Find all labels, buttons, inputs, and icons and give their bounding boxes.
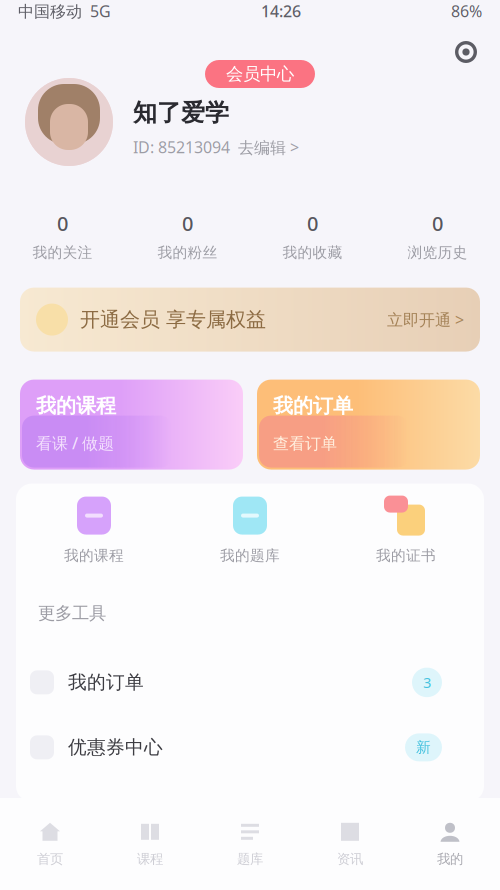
button[interactable]: 我的 [400, 807, 500, 881]
button[interactable]: 会员中心 [205, 60, 315, 88]
staticText: 看课 / 做题 [36, 432, 114, 453]
staticText: 课程 [137, 851, 163, 867]
button[interactable]: 我的证书 [328, 496, 484, 565]
button[interactable]: 我的课程 [16, 496, 172, 565]
button[interactable]: 0 [250, 210, 375, 262]
staticText: 查看订单 [273, 434, 337, 454]
staticText: 我的订单 [273, 394, 353, 418]
staticText: 资讯 [337, 851, 363, 867]
staticText: 我的 [437, 851, 463, 867]
button[interactable]: 我的订单 [257, 380, 480, 470]
button[interactable]: 我的课程 [20, 380, 243, 470]
button[interactable]: 我的题库 [172, 496, 328, 565]
staticText: 立即开通 > [387, 309, 464, 330]
staticText: 开通会员 享专属权益 [80, 307, 266, 332]
staticText: 题库 [237, 851, 263, 867]
staticText: 优惠券中心 [68, 736, 163, 759]
staticText: 14:26 [261, 0, 301, 22]
staticText: 知了爱学 [133, 98, 229, 127]
staticText: 我的课程 [64, 547, 124, 565]
staticText: 中国移动 5G [18, 0, 111, 22]
button[interactable]: 课程 [100, 807, 200, 881]
button[interactable]: Settings [446, 32, 486, 72]
staticText: 我的题库 [220, 547, 280, 565]
button[interactable]: 首页 [0, 807, 100, 881]
staticText: 更多工具 [38, 603, 106, 624]
button[interactable]: 优惠券中心 [16, 715, 484, 780]
staticText: 我的证书 [376, 547, 436, 565]
staticText: 3 [423, 673, 431, 692]
staticText: 0 [432, 210, 443, 237]
staticText: 我的订单 [68, 671, 144, 694]
button[interactable]: 开通会员 享专属权益 [0, 288, 500, 352]
button[interactable]: 0 [125, 210, 250, 262]
button[interactable]: 资讯 [300, 807, 400, 881]
staticText: 我的收藏 [282, 244, 342, 262]
staticText: 会员中心 [226, 63, 294, 85]
staticText: 我的粉丝 [157, 244, 217, 262]
button[interactable]: 0 [0, 210, 125, 262]
staticText: 浏览历史 [407, 244, 467, 262]
staticText: 新 [416, 738, 431, 756]
staticText: ID: 85213094 去编辑 > [133, 136, 299, 158]
staticText: 0 [182, 210, 193, 237]
staticText: 86% [451, 0, 482, 22]
button[interactable]: 我的订单 [16, 650, 484, 715]
staticText: 我的课程 [36, 394, 116, 418]
button[interactable]: 题库 [200, 807, 300, 881]
staticText: 我的关注 [32, 244, 92, 262]
staticText: 首页 [37, 851, 63, 867]
staticText: 0 [57, 210, 68, 237]
staticText: 0 [307, 210, 318, 237]
button[interactable]: 0 [375, 210, 500, 262]
